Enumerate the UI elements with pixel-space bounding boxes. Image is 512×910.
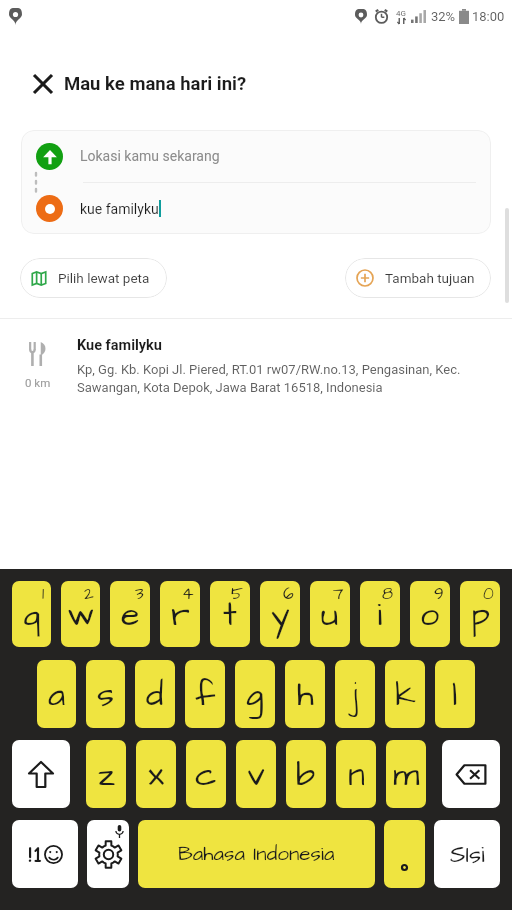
staticText: l [452,671,458,718]
button[interactable]: t [210,581,250,647]
button[interactable]: Tambah tujuan [345,258,491,298]
staticText: Kp, Gg. Kb. Kopi Jl. Piered, RT.01 rw07/… [77,362,490,395]
staticText: q [23,591,41,638]
button[interactable]: y [260,581,300,647]
button[interactable]: s [86,660,125,728]
staticText: Lokasi kamu sekarang [80,148,220,164]
button[interactable]: j [335,660,375,728]
staticText: SIsi [450,838,485,871]
staticText: z [98,751,115,798]
button[interactable]: a [37,660,76,728]
button[interactable]: p [460,581,500,647]
button[interactable]: z [86,740,126,808]
staticText: kue familyku [80,201,159,217]
staticText: Kue familyku [77,337,162,354]
button[interactable]: Settings [87,820,129,888]
button[interactable]: Backspace [442,740,500,808]
button[interactable]: d [135,660,175,728]
staticText: 0 km [25,376,51,389]
staticText: 4 [182,582,194,606]
staticText: !1 [27,841,43,867]
button[interactable]: e [110,581,150,647]
button[interactable]: w [61,581,100,647]
button[interactable]: o [410,581,450,647]
button[interactable]: r [160,581,200,647]
staticText: u [321,591,339,638]
button[interactable]: v [236,740,276,808]
button[interactable]: Close [28,69,58,99]
button[interactable]: Symbols and emoji [12,820,78,888]
staticText: 0 [483,582,494,606]
staticText: 6 [283,582,294,606]
staticText: c [195,751,217,798]
button[interactable]: g [235,660,275,728]
staticText: 7 [333,582,344,606]
staticText: m [393,751,420,798]
button[interactable]: x [136,740,176,808]
staticText: 32% [431,9,456,24]
button[interactable]: b [286,740,326,808]
staticText: 8 [382,582,394,606]
button[interactable]: h [285,660,325,728]
button[interactable]: Enter [434,820,500,888]
staticText: j [352,671,359,718]
button[interactable]: k [385,660,425,728]
staticText: o [420,591,440,638]
staticText: p [471,591,490,638]
staticText: Bahasa Indonesia [178,840,335,869]
staticText: v [247,751,265,798]
button[interactable]: 0 km [0,319,512,409]
staticText: Mau ke mana hari ini? [64,73,247,95]
staticText: b [296,751,316,798]
staticText: r [171,591,190,638]
staticText: x [148,751,165,798]
button[interactable]: kue familyku [21,183,491,234]
staticText: t [223,591,237,638]
staticText: 9 [434,582,444,606]
staticText: Pilih lewat peta [58,270,150,286]
button[interactable]: q [12,581,51,647]
button[interactable]: Lokasi kamu sekarang [21,130,491,182]
staticText: 3 [135,582,144,606]
button[interactable]: n [336,740,376,808]
staticText: h [297,671,314,718]
staticText: d [146,671,164,718]
staticText: g [246,671,264,718]
button[interactable]: Pilih lewat peta [20,258,167,298]
staticText: y [271,591,290,638]
staticText: k [395,671,416,718]
button[interactable]: Space, Bahasa Indonesia [138,820,375,888]
staticText: Tambah tujuan [385,270,475,286]
staticText: i [377,591,383,638]
staticText: 4G [396,9,406,18]
staticText: w [67,591,95,638]
staticText: 18:00 [472,9,505,24]
staticText: s [97,671,115,718]
button[interactable]: f [185,660,225,728]
staticText: n [348,751,365,798]
staticText: e [121,591,140,638]
staticText: 2 [84,582,94,606]
staticText: 5 [231,582,244,606]
button[interactable]: l [435,660,475,728]
staticText: f [195,671,216,718]
button[interactable]: m [386,740,426,808]
button[interactable]: u [310,581,350,647]
button[interactable]: Shift [12,740,70,808]
button[interactable]: Period [384,820,425,888]
button[interactable]: c [186,740,226,808]
staticText: 1 [42,582,45,606]
staticText: a [48,671,66,718]
button[interactable]: i [360,581,400,647]
